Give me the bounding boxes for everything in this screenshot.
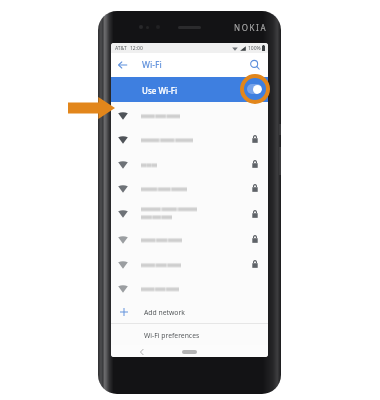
button[interactable]: Wi-Fi preferences: [111, 324, 268, 345]
button[interactable]: [111, 127, 268, 151]
staticText: Use Wi-Fi: [142, 85, 178, 96]
button[interactable]: Use Wi-Fi: [111, 77, 268, 102]
staticText: Wi-Fi: [142, 59, 162, 71]
button[interactable]: Add network: [111, 300, 268, 323]
staticText: NOKIA: [234, 22, 268, 33]
staticText: 100%: [248, 45, 261, 52]
staticText: AT&T: [115, 45, 127, 52]
button[interactable]: Back: [116, 58, 130, 72]
button[interactable]: [111, 176, 268, 200]
button[interactable]: [111, 200, 268, 227]
staticText: 12:00: [130, 45, 143, 52]
staticText: Add network: [144, 308, 185, 317]
button[interactable]: Search: [248, 58, 262, 72]
button[interactable]: [111, 103, 268, 127]
button[interactable]: [111, 276, 268, 300]
button[interactable]: [111, 152, 268, 176]
button[interactable]: [111, 252, 268, 276]
button[interactable]: [111, 227, 268, 251]
staticText: Wi-Fi preferences: [144, 331, 200, 340]
